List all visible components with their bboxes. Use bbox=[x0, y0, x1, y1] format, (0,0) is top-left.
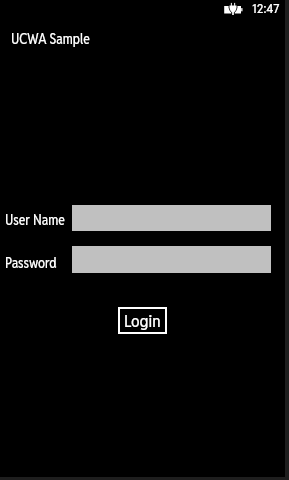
staticText: Password bbox=[5, 254, 57, 272]
staticText: Login bbox=[124, 310, 161, 332]
staticText: 12:47 bbox=[252, 0, 280, 17]
other: Battery charging bbox=[223, 2, 243, 16]
staticText: UCWA Sample bbox=[11, 30, 90, 48]
button[interactable]: Login bbox=[118, 307, 167, 334]
staticText: User Name bbox=[5, 211, 65, 229]
